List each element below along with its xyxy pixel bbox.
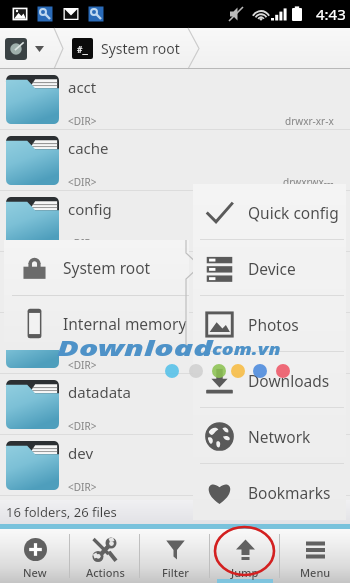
staticText: #_ <box>77 43 88 55</box>
staticText: d <box>68 260 78 280</box>
staticText: acct <box>68 77 97 97</box>
button[interactable]: d <box>0 252 350 313</box>
button[interactable]: Network <box>193 408 346 464</box>
staticText: <DIR> <box>68 114 97 128</box>
other: App icon <box>5 38 27 60</box>
staticText: Photos <box>248 314 299 335</box>
staticText: datadata <box>68 382 131 402</box>
staticText: Network <box>248 426 311 447</box>
staticText: cache <box>68 138 109 158</box>
button[interactable]: data <box>0 313 350 374</box>
button[interactable]: dev <box>0 435 350 496</box>
staticText: System root <box>101 39 180 58</box>
button[interactable]: App icon <box>0 38 54 60</box>
button[interactable]: Actions <box>70 529 140 583</box>
staticText: .com.vn <box>206 339 281 360</box>
staticText: drwxr-xr-x <box>285 114 334 128</box>
button[interactable]: #_ <box>72 34 188 63</box>
staticText: drwxrwx--- <box>283 175 334 189</box>
button[interactable]: datadata <box>0 374 350 435</box>
staticText: <DIR> <box>68 480 97 494</box>
button[interactable]: System root <box>4 240 189 295</box>
staticText: drwxrwx--x <box>281 358 334 372</box>
staticText: config <box>68 199 112 219</box>
button[interactable]: cache <box>0 130 350 191</box>
staticText: New <box>23 565 47 580</box>
staticText: drwxr-xr-x <box>285 236 334 250</box>
staticText: Internal memory <box>63 313 187 334</box>
staticText: Actions <box>86 565 125 580</box>
button[interactable]: Downloads <box>193 352 346 408</box>
staticText: Filter <box>162 565 189 580</box>
staticText: System root <box>63 257 151 278</box>
staticText: Bookmarks <box>248 482 331 503</box>
staticText: Downloads <box>248 370 330 391</box>
button[interactable]: acct <box>0 69 350 130</box>
staticText: drwxr-xr-x <box>285 480 334 494</box>
button[interactable]: Bookmarks <box>193 464 346 520</box>
staticText: 16 folders, 26 files <box>6 503 117 521</box>
staticText: Menu <box>300 565 331 580</box>
staticText: 4:43 <box>316 4 346 24</box>
staticText: <DIR> <box>68 236 97 250</box>
button[interactable]: Device <box>193 240 346 296</box>
staticText: Quick config <box>248 202 339 223</box>
staticText: dev <box>68 443 94 463</box>
staticText: <DIR> <box>68 419 97 433</box>
button[interactable]: Jump <box>210 529 280 583</box>
staticText: Download <box>57 334 213 362</box>
staticText: <DIR> <box>68 175 97 189</box>
button[interactable]: New <box>0 529 70 583</box>
staticText: Jump <box>231 565 259 580</box>
button[interactable]: Filter <box>140 529 210 583</box>
staticText: drwxrwx--x <box>281 419 334 433</box>
staticText: <DIR> <box>68 358 97 372</box>
button[interactable]: Quick config <box>193 184 346 240</box>
staticText: Device <box>248 258 296 279</box>
button[interactable]: Photos <box>193 296 346 352</box>
button[interactable]: Menu <box>280 529 350 583</box>
staticText: data <box>68 321 100 341</box>
button[interactable]: config <box>0 191 350 252</box>
button[interactable]: Internal memory <box>4 296 189 350</box>
